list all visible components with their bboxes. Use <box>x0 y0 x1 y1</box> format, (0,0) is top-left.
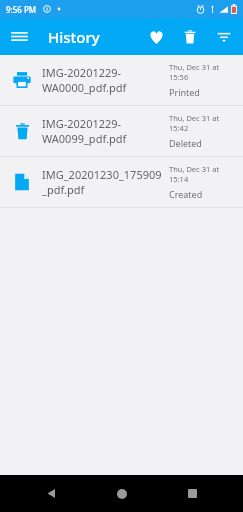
button[interactable]: Filter <box>207 20 241 54</box>
button[interactable]: Delete all <box>173 20 207 54</box>
button[interactable]: Recent apps <box>172 475 212 512</box>
staticText: Thu, Dec 31 at 15:42 <box>169 113 237 133</box>
staticText: Deleted <box>169 137 202 149</box>
staticText: Thu, Dec 31 at 15:14 <box>169 164 237 184</box>
button[interactable]: Open navigation menu <box>0 18 38 55</box>
staticText: IMG-20201229-WA0099_pdf.pdf <box>42 116 165 146</box>
button[interactable]: IMG-20201229-WA0099_pdf.pdf <box>0 106 243 156</box>
staticText: Created <box>169 188 203 200</box>
staticText: Thu, Dec 31 at 15:56 <box>169 62 237 82</box>
button[interactable]: Favorites <box>139 20 173 54</box>
staticText: History <box>48 27 100 47</box>
button[interactable]: IMG-20201229-WA0000_pdf.pdf <box>0 55 243 105</box>
staticText: 9:56 PM <box>6 4 37 15</box>
button[interactable]: Back <box>31 475 71 512</box>
staticText: Printed <box>169 86 200 98</box>
button[interactable]: Home <box>102 475 142 512</box>
staticText: IMG_20201230_175909_pdf.pdf <box>42 167 165 197</box>
staticText: IMG-20201229-WA0000_pdf.pdf <box>42 65 165 95</box>
button[interactable]: IMG_20201230_175909_pdf.pdf <box>0 157 243 207</box>
